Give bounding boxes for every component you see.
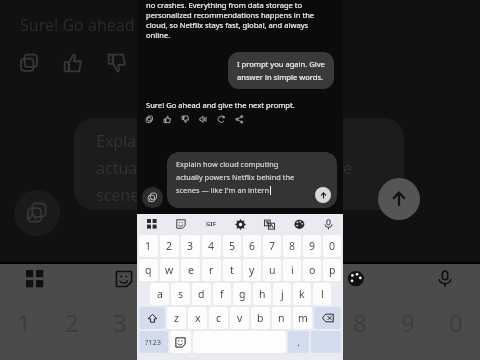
- staticText: i: [291, 263, 294, 277]
- button[interactable]: 5: [223, 235, 241, 257]
- staticText: GIF: [206, 220, 216, 228]
- button[interactable]: t: [223, 259, 241, 281]
- button[interactable]: l: [313, 283, 331, 305]
- button[interactable]: Good response: [163, 115, 177, 129]
- staticText: k: [299, 287, 305, 301]
- button[interactable]: j: [273, 283, 291, 305]
- button[interactable]: u: [263, 259, 281, 281]
- button[interactable]: h: [253, 283, 271, 305]
- staticText: r: [209, 263, 214, 277]
- staticText: 0: [329, 239, 336, 253]
- button[interactable]: z: [167, 307, 186, 329]
- staticText: c: [216, 311, 222, 325]
- button[interactable]: I prompt you again. Give: [228, 52, 334, 89]
- staticText: 6: [257, 306, 271, 339]
- button[interactable]: Shift: [139, 307, 165, 329]
- staticText: e: [188, 263, 194, 277]
- button[interactable]: 7: [263, 235, 281, 257]
- button[interactable]: Explain how cloud computing: [167, 152, 337, 208]
- staticText: .: [297, 335, 300, 349]
- staticText: f: [220, 287, 224, 301]
- staticText: no crashes. Everything from data storage…: [146, 0, 303, 10]
- button[interactable]: ?123: [139, 331, 168, 353]
- button[interactable]: 4: [202, 235, 221, 257]
- staticText: 0: [449, 306, 463, 339]
- button[interactable]: Voice input: [320, 216, 336, 232]
- button[interactable]: Apps: [144, 216, 160, 232]
- button[interactable]: e: [181, 259, 200, 281]
- button[interactable]: 0: [323, 235, 341, 257]
- button[interactable]: 2: [160, 235, 179, 257]
- staticText: 9: [309, 239, 316, 253]
- staticText: 1: [145, 239, 152, 253]
- button[interactable]: Regenerate: [217, 115, 231, 129]
- staticText: I prompt you again. Give: [237, 59, 325, 69]
- staticText: u: [269, 263, 276, 277]
- button[interactable]: i: [283, 259, 301, 281]
- staticText: h: [259, 287, 266, 301]
- staticText: online.: [146, 30, 171, 40]
- staticText: t: [230, 263, 234, 277]
- button[interactable]: s: [171, 283, 190, 305]
- button[interactable]: GIF: [203, 216, 219, 232]
- button[interactable]: f: [213, 283, 231, 305]
- staticText: a: [157, 287, 163, 301]
- staticText: s: [178, 287, 184, 301]
- button[interactable]: a: [150, 283, 169, 305]
- button[interactable]: x: [188, 307, 207, 329]
- button[interactable]: Add image: [142, 187, 163, 208]
- staticText: 4: [208, 239, 215, 253]
- button[interactable]: Settings: [232, 216, 248, 232]
- button[interactable]: 3: [181, 235, 200, 257]
- staticText: q: [145, 263, 152, 277]
- button[interactable]: Emoji: [170, 331, 191, 353]
- staticText: 2: [166, 239, 173, 253]
- button[interactable]: r: [202, 259, 221, 281]
- button[interactable]: d: [192, 283, 211, 305]
- staticText: actually powers Netflix behind the: [96, 157, 352, 179]
- button[interactable]: 8: [283, 235, 301, 257]
- staticText: 8: [289, 239, 296, 253]
- staticText: answer in simple words.: [237, 72, 324, 82]
- button[interactable]: Bad response: [181, 115, 195, 129]
- staticText: 4: [161, 306, 175, 339]
- staticText: Explain how cloud computing: [176, 159, 279, 169]
- staticText: l: [321, 287, 324, 301]
- button[interactable]: p: [323, 259, 341, 281]
- button[interactable]: g: [233, 283, 251, 305]
- button[interactable]: o: [303, 259, 321, 281]
- button[interactable]: v: [230, 307, 249, 329]
- button[interactable]: q: [139, 259, 158, 281]
- button[interactable]: Send: [315, 187, 331, 203]
- button[interactable]: Share: [235, 115, 249, 129]
- button[interactable]: n: [272, 307, 291, 329]
- staticText: 7: [269, 239, 276, 253]
- button[interactable]: c: [209, 307, 228, 329]
- staticText: p: [329, 263, 336, 277]
- button[interactable]: Themes: [291, 216, 307, 232]
- staticText: 5: [229, 239, 236, 253]
- staticText: cloud, so Netflix stays fast, global, an…: [146, 20, 309, 30]
- button[interactable]: .: [288, 331, 309, 353]
- button[interactable]: Stickers: [173, 216, 189, 232]
- button[interactable]: Read aloud: [199, 115, 213, 129]
- staticText: personalized recommendations happens in …: [146, 10, 315, 20]
- staticText: 7: [305, 306, 319, 339]
- button[interactable]: m: [293, 307, 312, 329]
- button[interactable]: 9: [303, 235, 321, 257]
- button[interactable]: Copy: [145, 115, 159, 129]
- button[interactable]: 1: [139, 235, 158, 257]
- button[interactable]: Backspace: [314, 307, 341, 329]
- staticText: v: [237, 311, 243, 325]
- button[interactable]: w: [160, 259, 179, 281]
- button[interactable]: 6: [243, 235, 261, 257]
- button[interactable]: Translate: [261, 216, 277, 232]
- staticText: o: [309, 263, 316, 277]
- button[interactable]: k: [293, 283, 311, 305]
- button[interactable]: y: [243, 259, 261, 281]
- staticText: 8: [353, 306, 367, 339]
- staticText: scenes — like I'm an intern: [176, 185, 269, 195]
- button[interactable]: b: [251, 307, 270, 329]
